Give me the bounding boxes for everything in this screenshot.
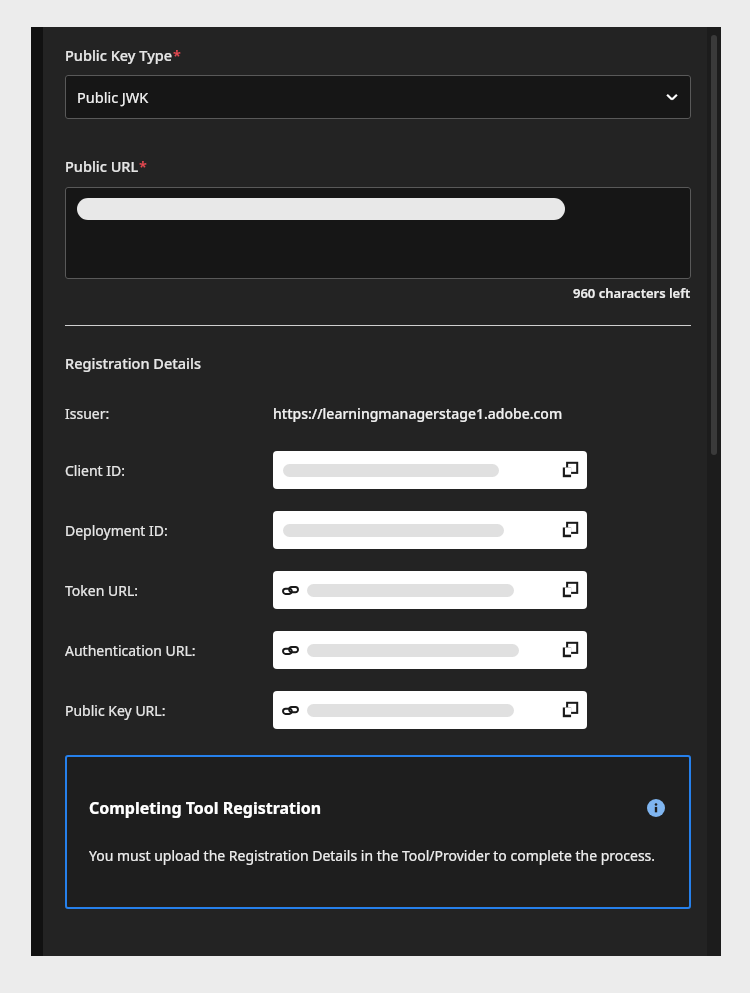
button[interactable]: Copy Deployment ID: (273, 511, 587, 549)
staticText: Public JWK (77, 87, 653, 107)
button[interactable]: Copy Client ID: (553, 451, 587, 489)
staticText: * (173, 45, 181, 65)
staticText: Registration Details (65, 353, 201, 373)
button[interactable]: Copy Token URL: (273, 571, 587, 609)
button[interactable]: Copy Token URL: (553, 571, 587, 609)
staticText: Deployment ID: (65, 521, 273, 540)
staticText: Public Key Type (65, 45, 173, 65)
button[interactable]: Copy Authentication URL: (273, 631, 587, 669)
staticText: 960 characters left (573, 284, 691, 302)
staticText: Public Key URL: (65, 701, 273, 720)
button[interactable]: Copy Client ID: (273, 451, 587, 489)
staticText: You must upload the Registration Details… (89, 846, 656, 865)
staticText: https://learningmanagerstage1.adobe.com (273, 404, 563, 423)
other: Open dropdown (653, 76, 691, 118)
staticText: Issuer: (65, 404, 273, 423)
staticText: Client ID: (65, 461, 273, 480)
staticText: Token URL: (65, 581, 273, 600)
button[interactable]: Copy Public Key URL: (273, 691, 587, 729)
staticText: Public URL (65, 156, 139, 176)
staticText: * (139, 156, 147, 176)
button[interactable]: Public JWK (65, 75, 691, 119)
button[interactable] (65, 187, 691, 279)
button[interactable]: Copy Authentication URL: (553, 631, 587, 669)
button[interactable]: More information (645, 797, 667, 819)
staticText: Completing Tool Registration (89, 797, 645, 819)
button[interactable]: Copy Deployment ID: (553, 511, 587, 549)
staticText: Authentication URL: (65, 641, 273, 660)
button[interactable]: Completing Tool Registration (65, 755, 691, 909)
button[interactable]: Copy Public Key URL: (553, 691, 587, 729)
